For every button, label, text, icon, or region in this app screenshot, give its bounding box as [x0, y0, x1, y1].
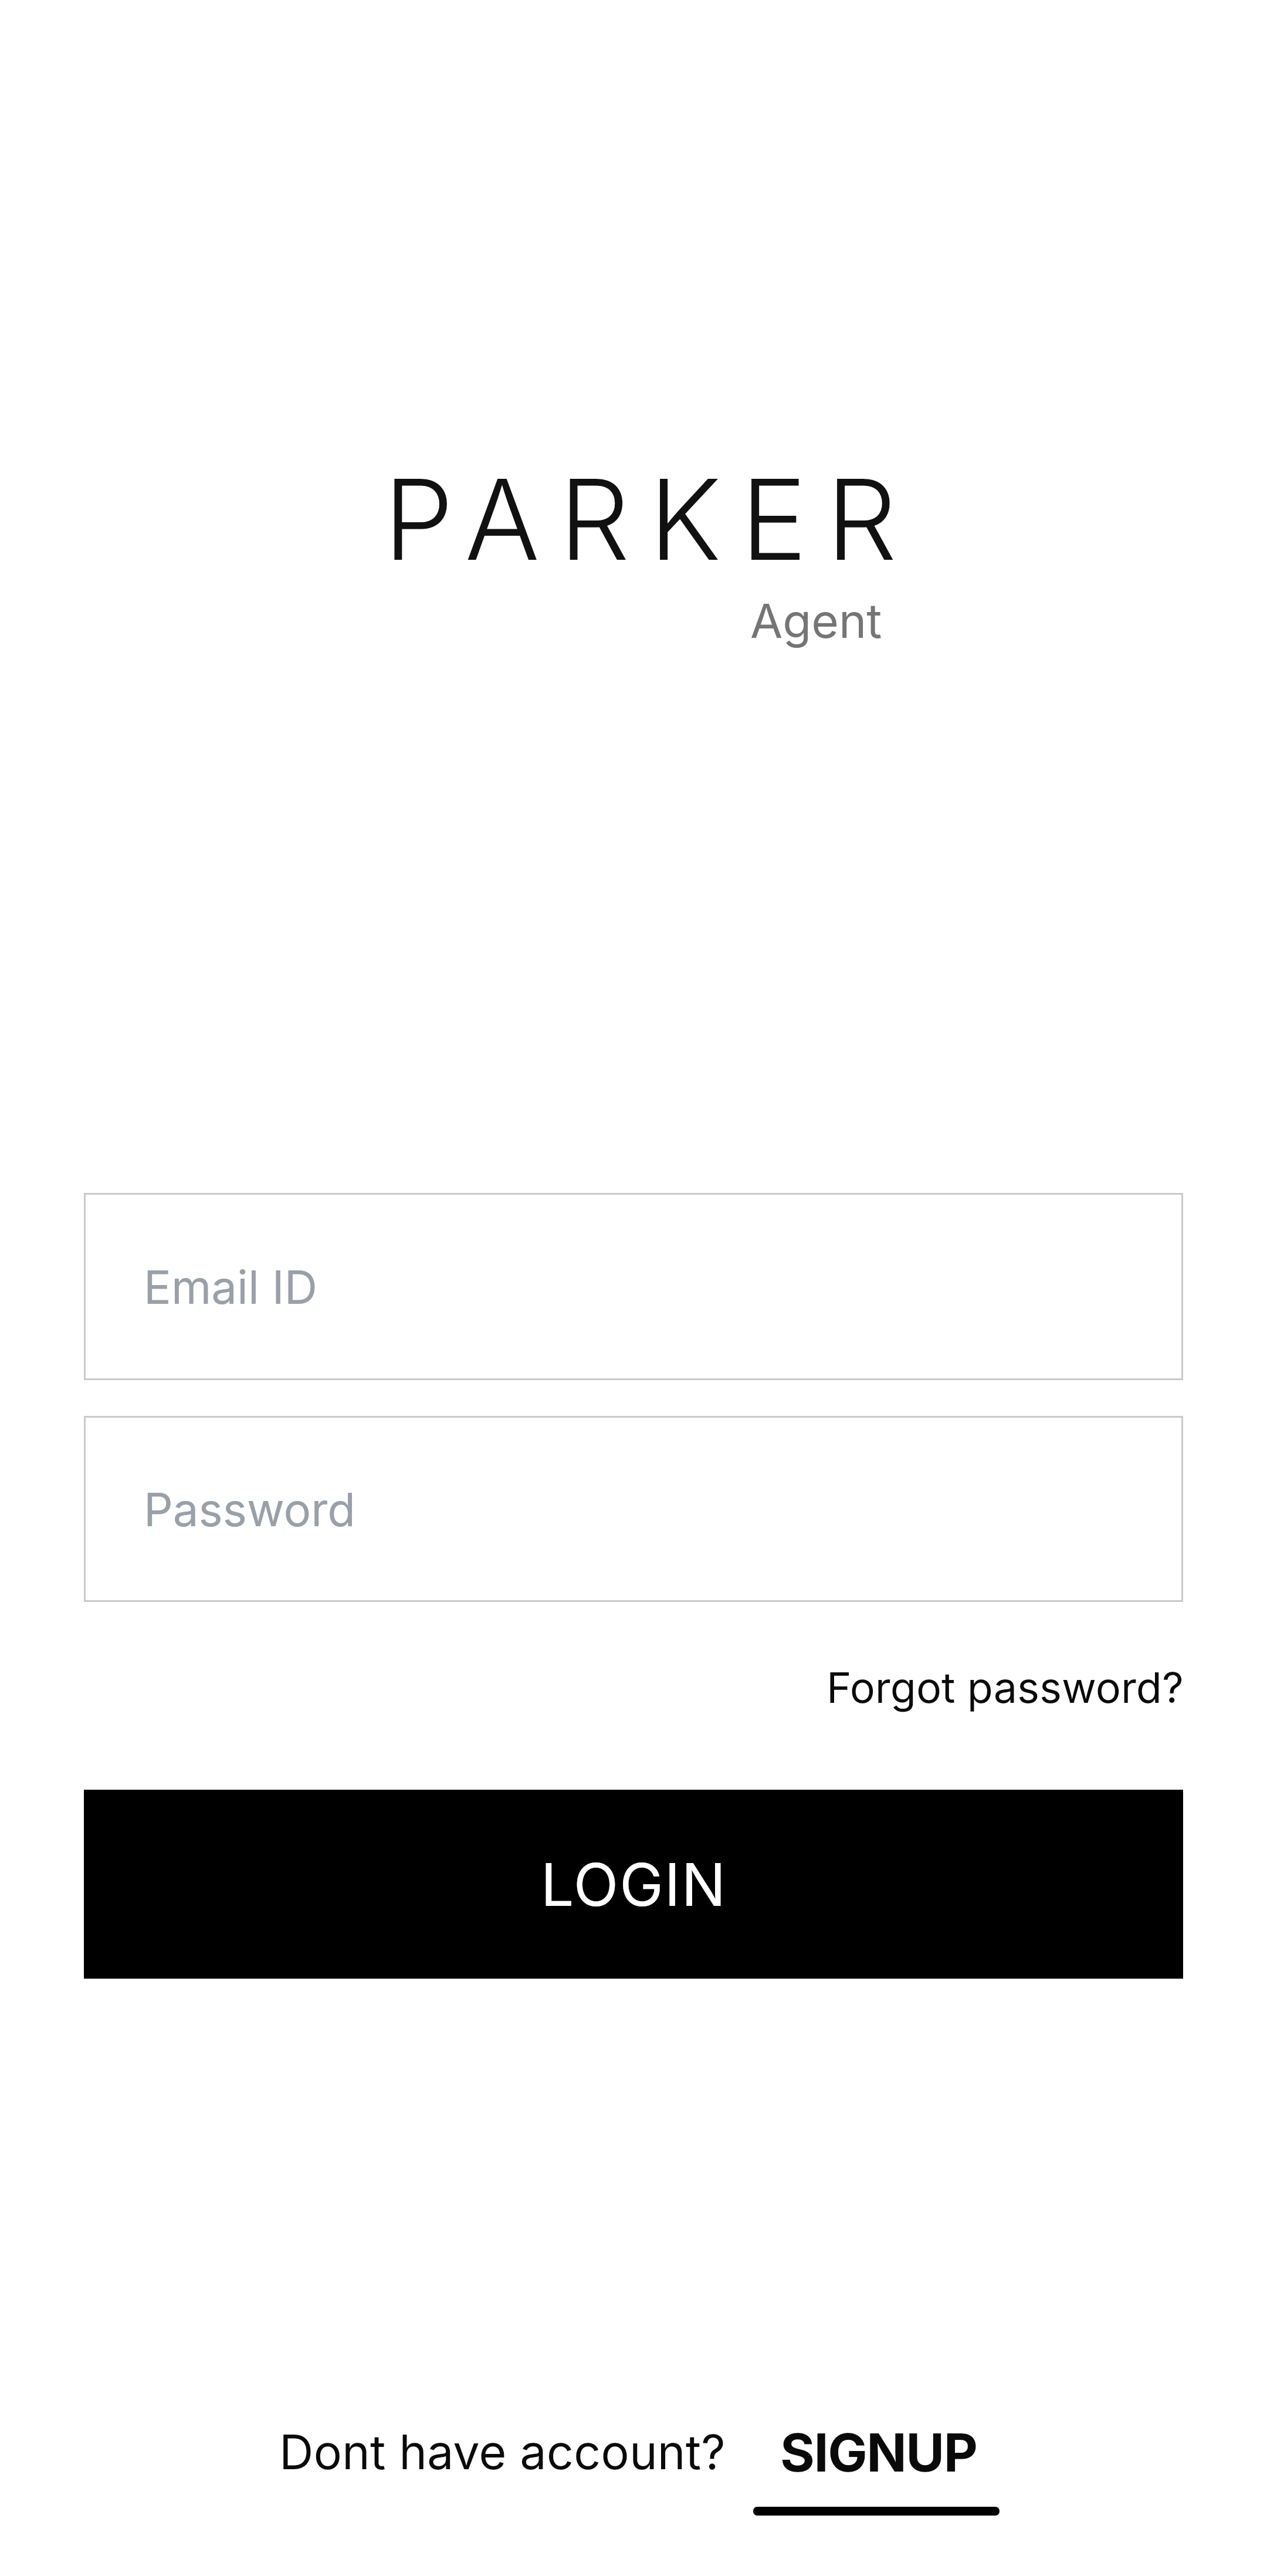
button[interactable]: SIGNUP: [753, 2406, 1000, 2517]
staticText: Agent: [750, 592, 882, 649]
button[interactable]: Email ID: [84, 1193, 1183, 1380]
staticText: PARKER: [384, 452, 917, 587]
staticText: LOGIN: [541, 1849, 727, 1920]
staticText: Dont have account?: [279, 2423, 726, 2481]
button[interactable]: Password: [84, 1416, 1183, 1602]
staticText: Email ID: [144, 1259, 317, 1314]
button[interactable]: Forgot password?: [826, 1662, 1184, 1713]
button[interactable]: LOGIN: [84, 1790, 1183, 1979]
staticText: Password: [144, 1482, 355, 1537]
staticText: SIGNUP: [780, 2421, 977, 2484]
